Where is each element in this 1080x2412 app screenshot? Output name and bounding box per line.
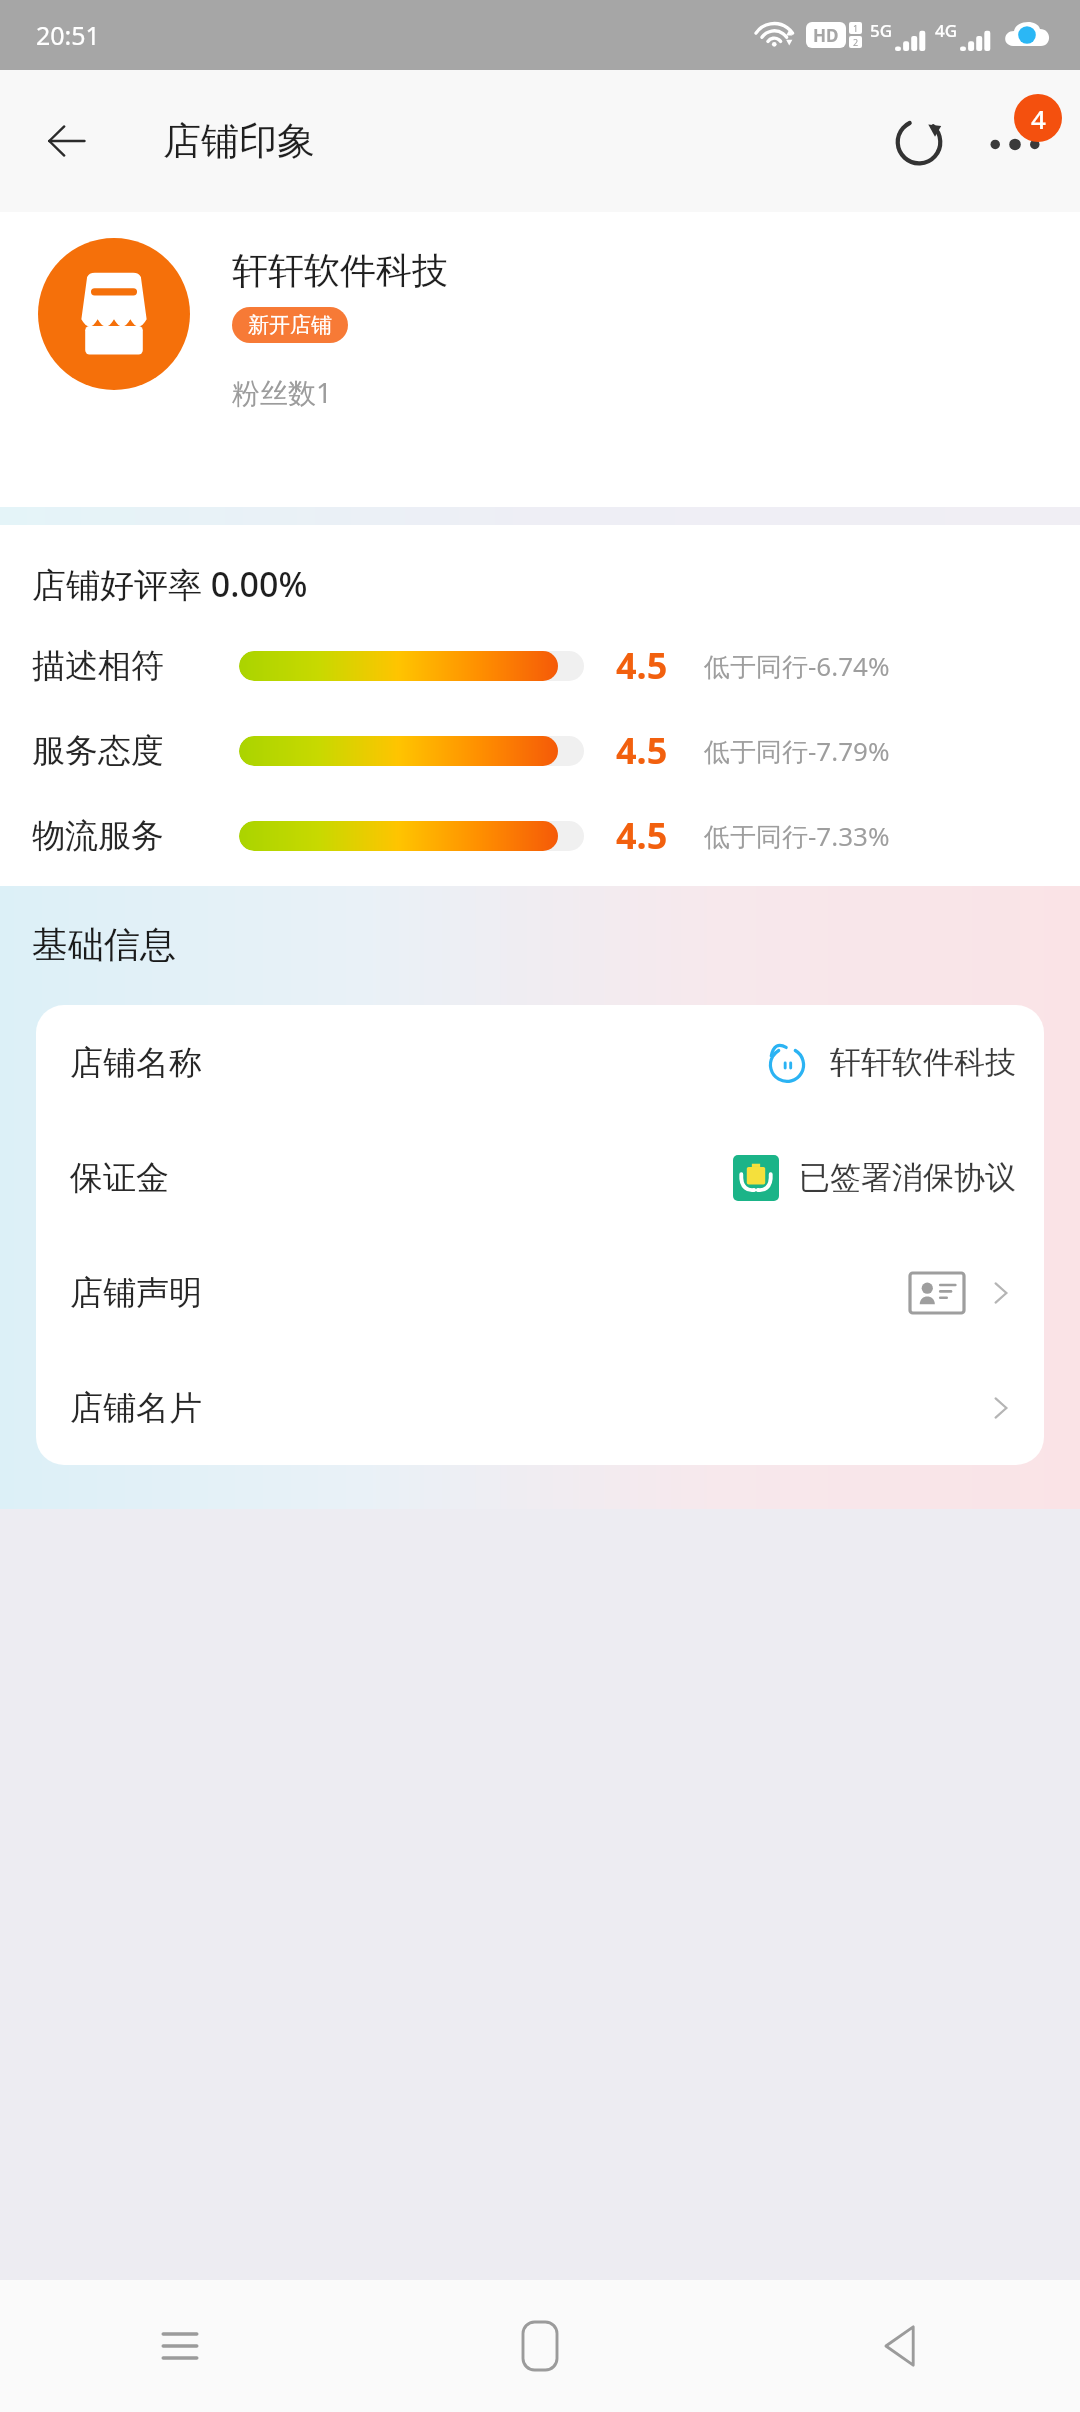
staticText: 店铺声明 bbox=[70, 1272, 202, 1314]
button[interactable]: 轩轩软件科技 bbox=[0, 212, 1080, 507]
button[interactable]: Home bbox=[360, 2280, 720, 2412]
staticText: 轩轩软件科技 bbox=[232, 248, 448, 293]
button[interactable]: Refresh bbox=[876, 98, 962, 184]
button[interactable]: More options, 4 notifications bbox=[972, 98, 1058, 184]
staticText: 4 bbox=[1031, 101, 1046, 136]
button[interactable]: 店铺声明 bbox=[36, 1235, 1044, 1350]
staticText: 物流服务 bbox=[32, 815, 217, 857]
staticText: 低于同行-7.33% bbox=[704, 818, 890, 854]
staticText: 保证金 bbox=[70, 1157, 169, 1199]
staticText: 店铺印象 bbox=[163, 117, 315, 165]
staticText: 轩轩软件科技 bbox=[830, 1043, 1016, 1082]
staticText: 基础信息 bbox=[32, 922, 176, 967]
button[interactable]: Back bbox=[30, 105, 102, 177]
staticText: 4.5 bbox=[616, 811, 704, 860]
staticText: 20:51 bbox=[36, 18, 100, 52]
staticText: 店铺好评率 0.00% bbox=[32, 561, 308, 607]
staticText: 4.5 bbox=[616, 641, 704, 690]
staticText: 服务态度 bbox=[32, 730, 217, 772]
staticText: 店铺名片 bbox=[70, 1387, 202, 1429]
button[interactable]: 店铺名称 bbox=[36, 1005, 1044, 1120]
button[interactable]: Recent apps bbox=[0, 2280, 360, 2412]
button[interactable]: 保证金 bbox=[36, 1120, 1044, 1235]
staticText: 2 bbox=[853, 36, 859, 48]
button[interactable]: 店铺名片 bbox=[36, 1350, 1044, 1465]
staticText: 4G bbox=[935, 19, 958, 42]
staticText: 低于同行-7.79% bbox=[704, 733, 890, 769]
staticText: 粉丝数1 bbox=[232, 373, 333, 411]
button[interactable]: Back bbox=[720, 2280, 1080, 2412]
staticText: 4.5 bbox=[616, 726, 704, 775]
staticText: 新开店铺 bbox=[248, 312, 332, 338]
staticText: 5G bbox=[870, 19, 893, 42]
staticText: 低于同行-6.74% bbox=[704, 648, 890, 684]
staticText: HD bbox=[813, 24, 839, 47]
staticText: 1 bbox=[853, 22, 859, 34]
staticText: 已签署消保协议 bbox=[799, 1158, 1016, 1197]
staticText: 店铺名称 bbox=[70, 1042, 202, 1084]
staticText: 描述相符 bbox=[32, 645, 217, 687]
